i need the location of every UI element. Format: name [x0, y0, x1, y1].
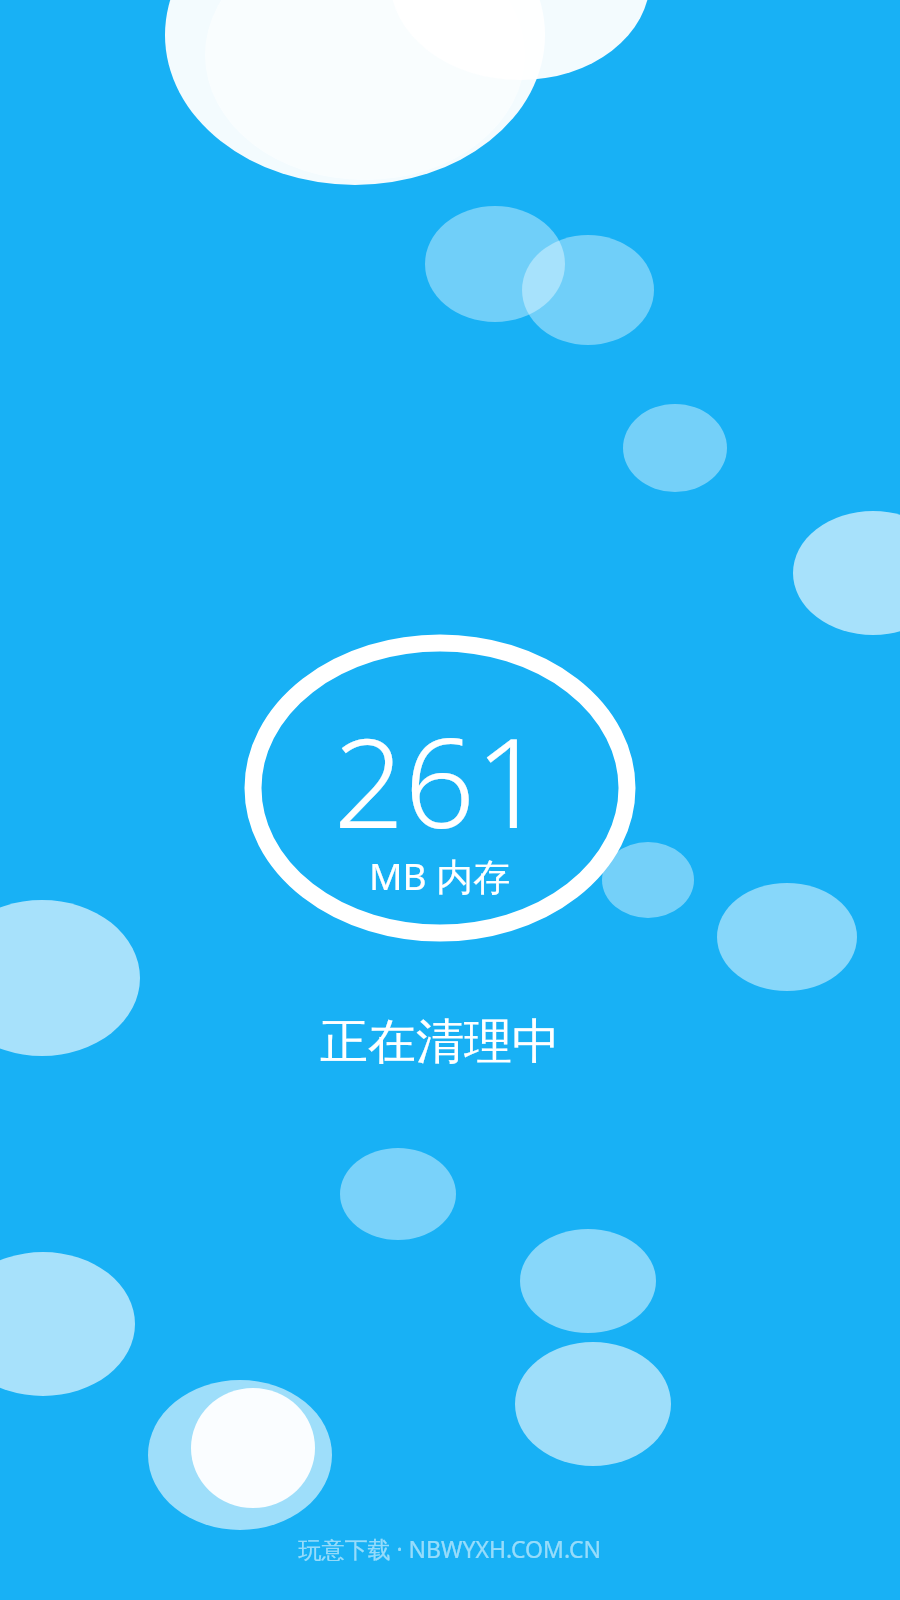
- button[interactable]: Cleaning memory, 261 MB: [0, 0, 900, 1600]
